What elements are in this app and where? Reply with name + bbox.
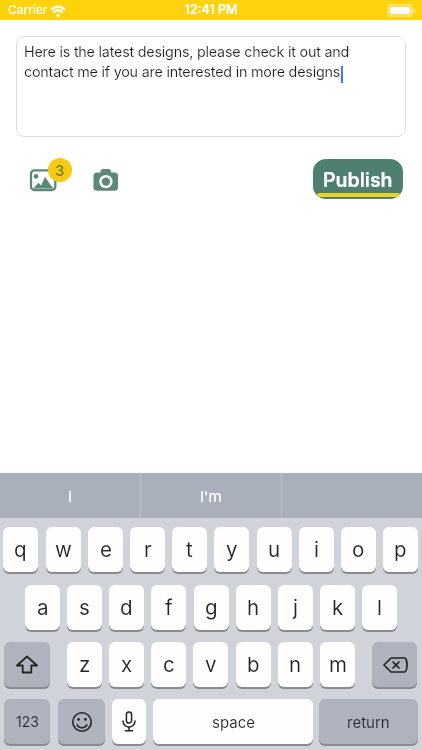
- staticText: t: [186, 537, 193, 562]
- button[interactable]: n: [278, 642, 313, 687]
- staticText: c: [163, 652, 175, 677]
- button[interactable]: f: [151, 585, 186, 630]
- staticText: x: [121, 652, 133, 677]
- staticText: d: [120, 595, 133, 620]
- staticText: f: [165, 595, 173, 620]
- staticText: e: [100, 537, 112, 562]
- button[interactable]: I: [0, 473, 140, 518]
- staticText: y: [226, 537, 238, 562]
- staticText: space: [212, 713, 255, 731]
- button[interactable]: s: [67, 585, 102, 630]
- staticText: l: [377, 595, 382, 620]
- button[interactable]: w: [46, 527, 81, 572]
- button[interactable]: r: [130, 527, 165, 572]
- button[interactable]: x: [109, 642, 144, 687]
- button[interactable]: g: [194, 585, 229, 630]
- button[interactable]: [58, 699, 105, 744]
- button[interactable]: return: [319, 699, 418, 744]
- staticText: Publish: [323, 168, 393, 192]
- button[interactable]: 123: [4, 699, 50, 744]
- button[interactable]: [372, 642, 417, 687]
- staticText: p: [394, 537, 407, 562]
- button[interactable]: j: [278, 585, 313, 630]
- staticText: return: [347, 713, 390, 731]
- staticText: i: [314, 537, 319, 562]
- button[interactable]: q: [3, 527, 38, 572]
- button[interactable]: i: [299, 527, 334, 572]
- button[interactable]: k: [320, 585, 355, 630]
- staticText: w: [55, 537, 72, 562]
- button[interactable]: I'm: [141, 473, 281, 518]
- staticText: k: [332, 595, 344, 620]
- button[interactable]: b: [236, 642, 271, 687]
- staticText: 3: [55, 161, 65, 179]
- staticText: Here is the latest designs, please check…: [24, 43, 350, 80]
- button[interactable]: space: [153, 699, 313, 744]
- staticText: q: [14, 537, 27, 562]
- staticText: I'm: [200, 487, 222, 505]
- button[interactable]: d: [109, 585, 144, 630]
- staticText: a: [37, 595, 49, 620]
- button[interactable]: [112, 699, 146, 744]
- button[interactable]: l: [362, 585, 397, 630]
- button[interactable]: 3: [24, 152, 76, 200]
- button[interactable]: h: [236, 585, 271, 630]
- button[interactable]: u: [257, 527, 292, 572]
- staticText: j: [293, 595, 298, 620]
- button[interactable]: v: [193, 642, 228, 687]
- button[interactable]: z: [67, 642, 102, 687]
- button[interactable]: e: [88, 527, 123, 572]
- staticText: 12:41 PM: [0, 2, 422, 17]
- button[interactable]: p: [383, 527, 418, 572]
- staticText: b: [247, 652, 260, 677]
- staticText: z: [79, 652, 91, 677]
- button[interactable]: t: [172, 527, 207, 572]
- staticText: 123: [16, 713, 39, 730]
- staticText: n: [289, 652, 302, 677]
- button[interactable]: y: [214, 527, 249, 572]
- button[interactable]: [90, 166, 124, 196]
- staticText: o: [352, 537, 365, 562]
- button[interactable]: Here is the latest designs, please check…: [16, 36, 406, 137]
- button[interactable]: a: [25, 585, 60, 630]
- staticText: r: [144, 537, 152, 562]
- staticText: u: [268, 537, 281, 562]
- button[interactable]: o: [341, 527, 376, 572]
- button[interactable]: Publish: [313, 159, 403, 199]
- staticText: h: [247, 595, 260, 620]
- button[interactable]: c: [151, 642, 186, 687]
- staticText: Carrier: [8, 2, 48, 17]
- button[interactable]: [4, 642, 50, 687]
- button[interactable]: m: [320, 642, 355, 687]
- staticText: v: [205, 652, 217, 677]
- staticText: I: [68, 487, 73, 505]
- staticText: m: [329, 652, 347, 677]
- staticText: s: [79, 595, 90, 620]
- staticText: g: [205, 595, 218, 620]
